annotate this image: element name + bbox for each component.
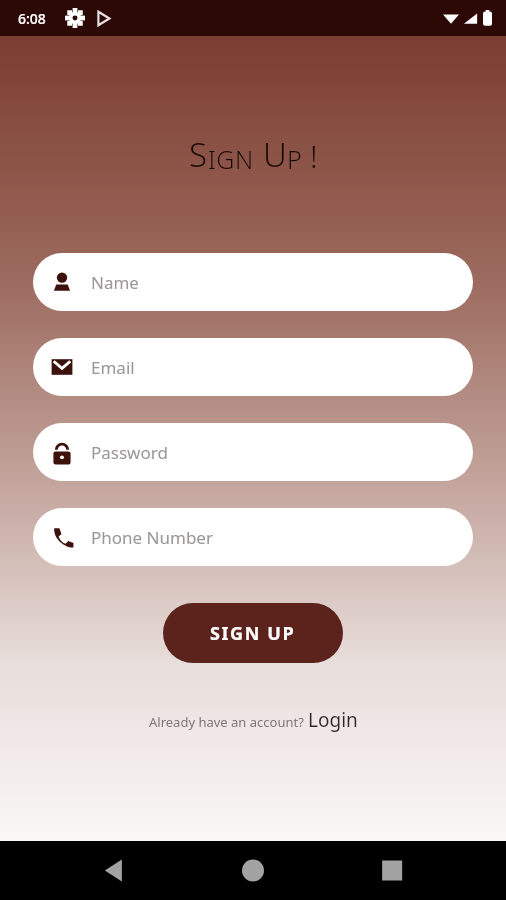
staticText: Phone Number <box>91 526 213 549</box>
other: Settings <box>66 9 84 27</box>
staticText: IGN <box>208 142 254 176</box>
button[interactable]: Login <box>308 707 358 733</box>
staticText: U <box>263 132 287 177</box>
other: Play Store <box>95 10 112 27</box>
staticText: Already have an account? <box>149 713 304 731</box>
button[interactable]: Email <box>33 338 473 396</box>
button[interactable]: Phone Number <box>33 508 473 566</box>
staticText: SIGN UP <box>210 621 296 646</box>
button[interactable]: SIGN UP <box>163 603 343 663</box>
staticText: S <box>189 132 208 177</box>
staticText: Password <box>91 441 168 464</box>
staticText: P <box>287 142 303 176</box>
button[interactable]: Name <box>33 253 473 311</box>
staticText: Name <box>91 271 139 294</box>
staticText: Login <box>308 707 358 733</box>
staticText: Email <box>91 356 135 379</box>
staticText: 6:08 <box>18 9 46 28</box>
button[interactable]: Password <box>33 423 473 481</box>
staticText: ! <box>310 135 318 177</box>
